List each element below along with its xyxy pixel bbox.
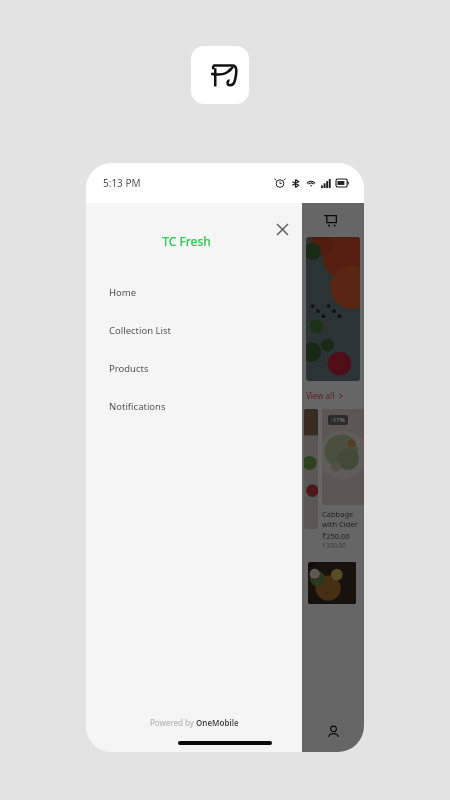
staticText: ₹300.00 xyxy=(322,541,347,550)
staticText: Products xyxy=(109,362,149,375)
staticText: Cabbage xyxy=(322,509,354,519)
button[interactable]: Home xyxy=(86,273,302,311)
staticText: TC Fresh xyxy=(162,233,211,249)
staticText: Powered by xyxy=(150,717,196,728)
button[interactable]: Account xyxy=(320,718,346,744)
button[interactable]: TC Fresh app icon xyxy=(191,46,249,104)
staticText: View all xyxy=(306,390,335,401)
staticText: Collection List xyxy=(109,324,171,337)
staticText: Notifications xyxy=(109,400,166,413)
button[interactable]: View all xyxy=(306,390,344,401)
button[interactable]: Notifications xyxy=(86,387,302,425)
button[interactable]: Cart xyxy=(318,208,342,232)
staticText: Home xyxy=(109,286,137,299)
staticText: 5:13 PM xyxy=(103,176,141,190)
staticText: OneMobile xyxy=(196,717,239,728)
button[interactable]: Close menu xyxy=(266,213,298,245)
button[interactable]: -17% xyxy=(322,409,364,550)
staticText: -17% xyxy=(331,416,345,424)
staticText: ₹250.00 xyxy=(322,531,350,541)
button[interactable]: Collection List xyxy=(86,311,302,349)
button[interactable]: Products xyxy=(86,349,302,387)
staticText: with Cider xyxy=(322,519,358,529)
